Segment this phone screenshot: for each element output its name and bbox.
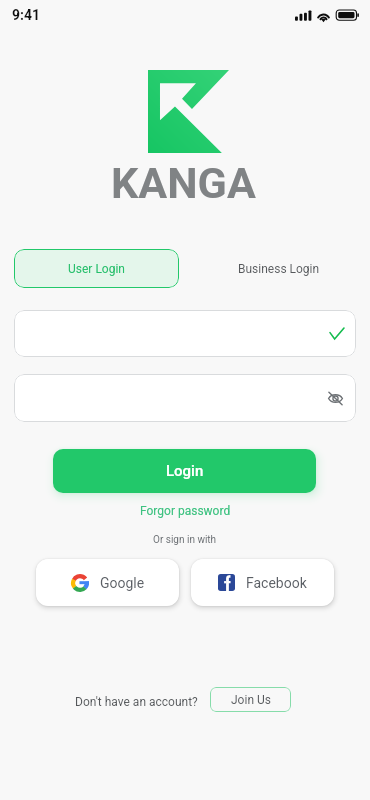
button[interactable]: User Login	[14, 249, 179, 288]
staticText: Business Login	[238, 262, 320, 276]
staticText: Or sign in with	[153, 534, 217, 546]
staticText: 9:41	[12, 7, 41, 23]
staticText: Join Us	[231, 693, 271, 707]
staticText: Facebook	[246, 575, 307, 591]
button[interactable]: Login	[53, 449, 316, 493]
button[interactable]	[14, 310, 356, 357]
staticText: Forgor password	[140, 504, 231, 518]
other: Show password	[326, 389, 344, 407]
button[interactable]: Facebook	[191, 559, 334, 606]
button[interactable]: Show password	[14, 374, 356, 422]
button[interactable]: Join Us	[210, 687, 291, 712]
button[interactable]: Google	[36, 559, 179, 606]
staticText: Login	[166, 462, 204, 480]
staticText: User Login	[68, 262, 125, 276]
staticText: Don't have an account?	[75, 695, 198, 709]
button[interactable]: Business Login	[193, 249, 365, 288]
button[interactable]: Forgor password	[136, 503, 235, 519]
staticText: Google	[100, 575, 145, 591]
staticText: KANGA	[111, 158, 256, 208]
